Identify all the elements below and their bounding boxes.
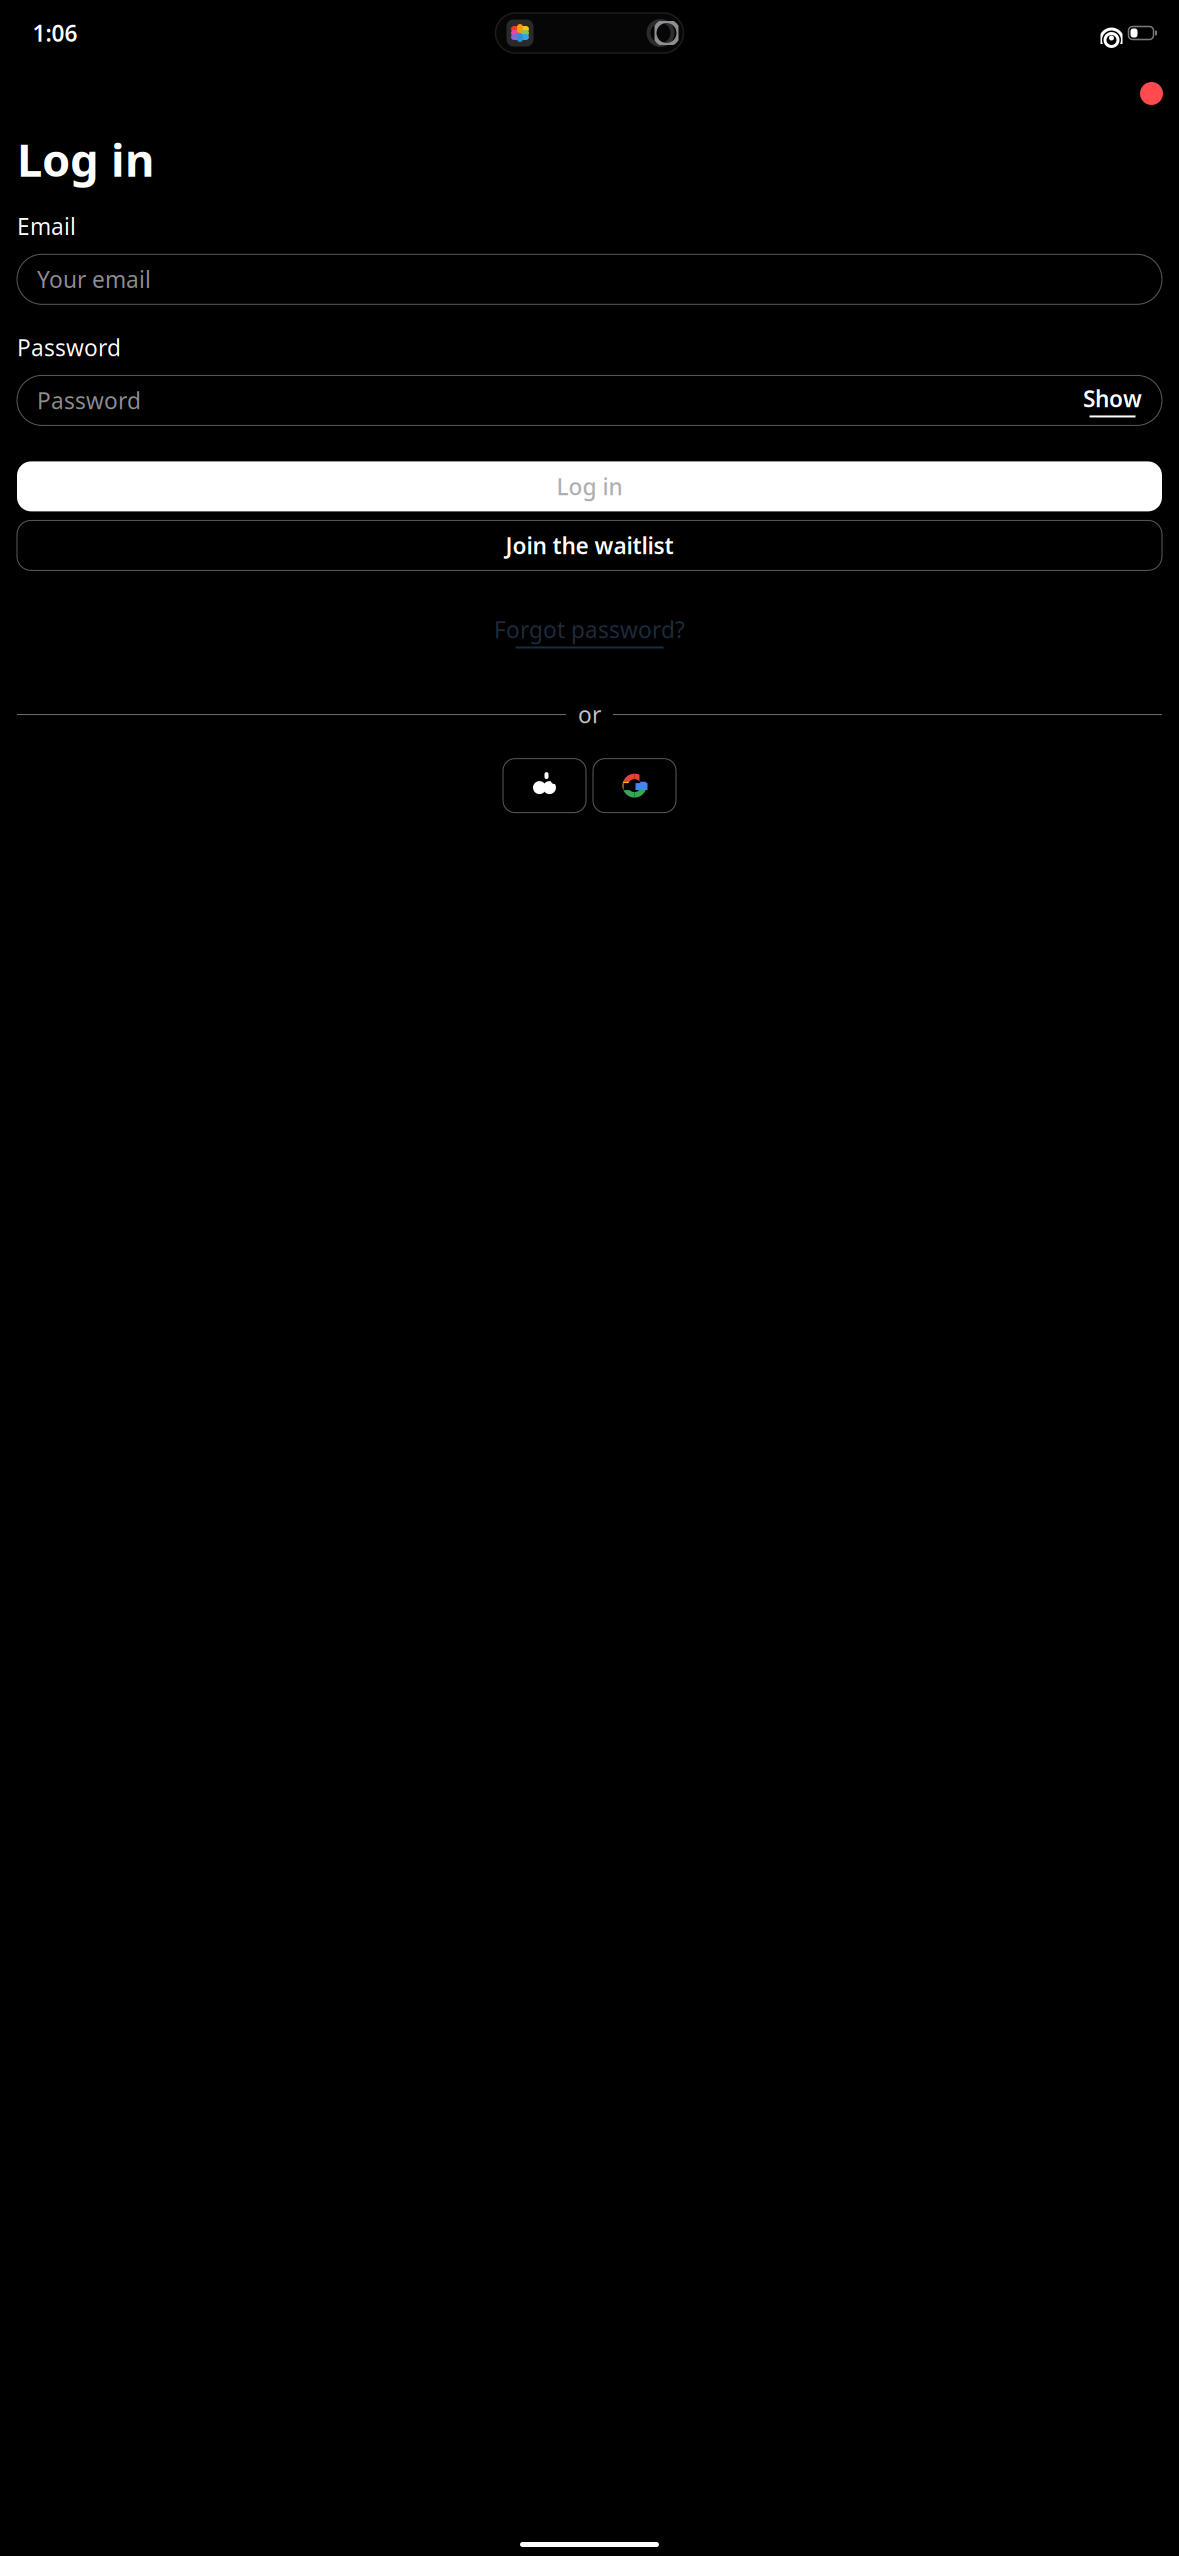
button[interactable]: Log in bbox=[17, 461, 1162, 511]
staticText: Email bbox=[17, 211, 76, 241]
button[interactable]: Join the waitlist bbox=[17, 520, 1162, 570]
staticText: Show bbox=[1083, 383, 1142, 413]
staticText: Log in bbox=[556, 471, 622, 501]
staticText: Join the waitlist bbox=[505, 530, 673, 560]
staticText: 1:06 bbox=[32, 18, 77, 48]
staticText: Log in bbox=[17, 129, 154, 189]
staticText: Password bbox=[37, 385, 141, 415]
staticText: or bbox=[578, 699, 601, 730]
button[interactable]: Your email bbox=[17, 254, 1162, 304]
button[interactable]: Continue with Google bbox=[593, 759, 676, 813]
button[interactable]: Show bbox=[1083, 383, 1142, 417]
button[interactable]: Continue with Apple bbox=[503, 759, 586, 813]
staticText: Your email bbox=[37, 264, 151, 294]
button[interactable]: Forgot password? bbox=[484, 606, 695, 656]
staticText: Forgot password? bbox=[494, 614, 685, 644]
staticText: Password bbox=[17, 332, 121, 362]
